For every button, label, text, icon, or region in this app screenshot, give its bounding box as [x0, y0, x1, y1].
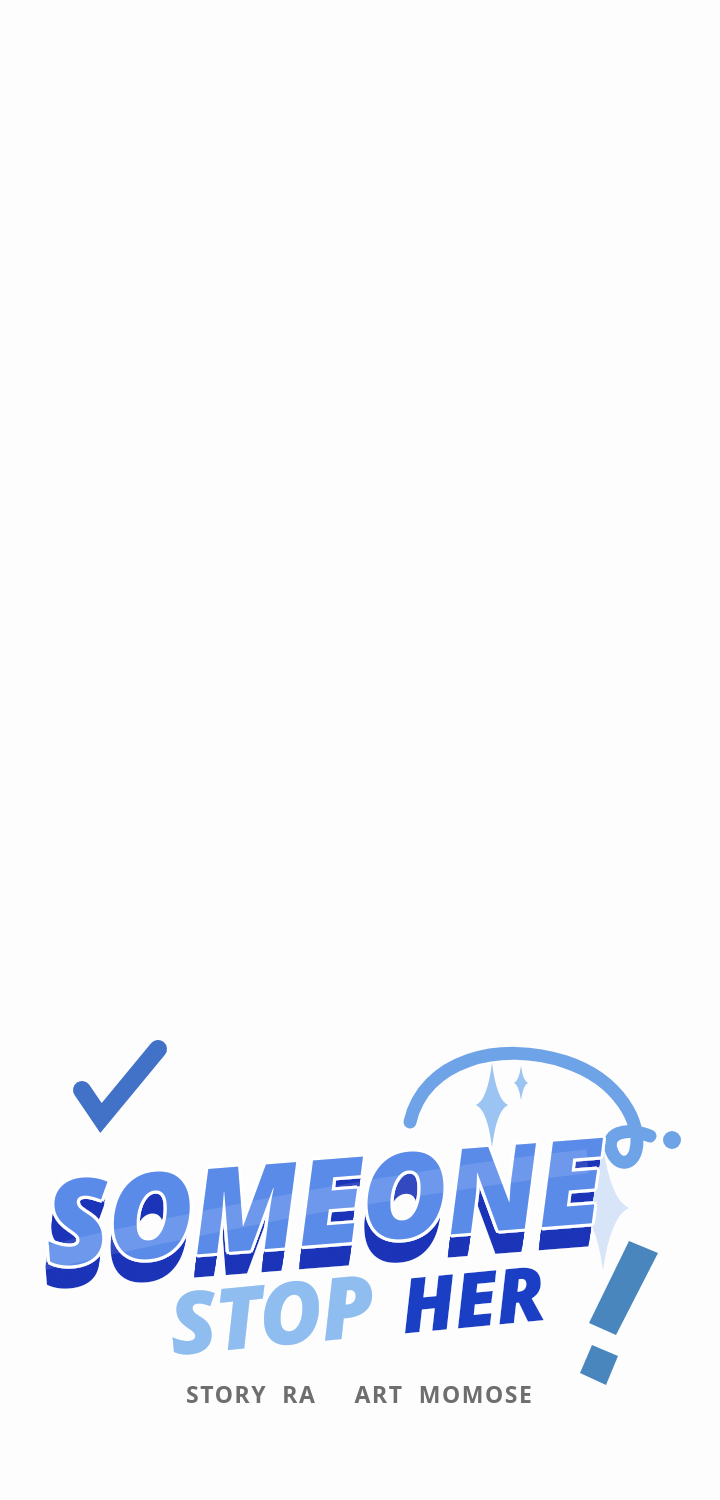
button[interactable]: Someone Stop Her title card [0, 0, 720, 1500]
